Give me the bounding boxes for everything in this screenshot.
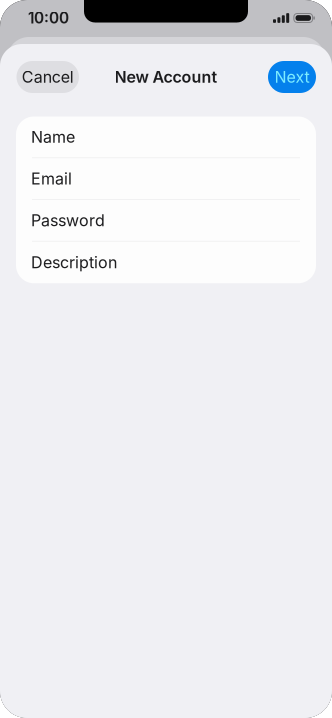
button[interactable]: Name xyxy=(16,116,316,158)
button[interactable]: Next xyxy=(268,61,316,93)
staticText: Name xyxy=(31,127,75,147)
staticText: New Account xyxy=(114,67,217,87)
button[interactable]: Description xyxy=(16,242,316,283)
staticText: Email xyxy=(31,169,72,188)
staticText: Next xyxy=(274,67,309,87)
button[interactable]: Email xyxy=(16,158,316,200)
staticText: Cancel xyxy=(22,67,74,87)
button[interactable]: Cancel xyxy=(16,61,79,93)
button[interactable]: Password xyxy=(16,200,316,242)
staticText: Description xyxy=(31,253,117,272)
staticText: 10:00 xyxy=(28,9,69,27)
staticText: Password xyxy=(31,211,105,230)
